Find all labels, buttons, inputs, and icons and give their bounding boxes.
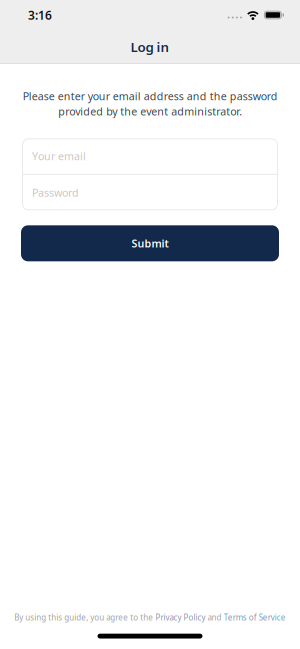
staticText: Terms of Service (224, 612, 286, 623)
staticText: Privacy Policy (155, 612, 205, 623)
staticText: Log in (130, 38, 169, 56)
staticText: 3:16 (28, 7, 52, 23)
staticText: Submit (131, 236, 168, 250)
button[interactable]: Privacy Policy (155, 612, 205, 623)
staticText: Your email (32, 149, 86, 163)
button[interactable]: Submit (21, 225, 279, 261)
staticText: Please enter your email address and the … (22, 89, 277, 118)
button[interactable]: Your email (22, 138, 278, 174)
staticText: By using this guide, you agree to the (14, 612, 153, 623)
staticText: and (208, 612, 222, 623)
staticText: Password (32, 185, 79, 200)
button[interactable]: Password (22, 175, 278, 210)
button[interactable]: Terms of Service (224, 612, 286, 623)
